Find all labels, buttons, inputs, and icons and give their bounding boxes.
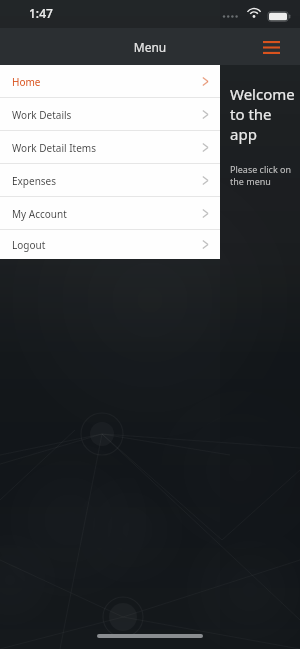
button[interactable]: Expenses: [0, 164, 220, 197]
button[interactable]: Home: [0, 65, 220, 98]
staticText: Expenses: [12, 174, 57, 188]
button[interactable]: Work Detail Items: [0, 131, 220, 164]
staticText: 1:47: [29, 5, 53, 21]
staticText: Work Detail Items: [12, 141, 96, 155]
staticText: Menu: [0, 39, 300, 55]
staticText: Work Details: [12, 108, 72, 122]
staticText: Logout: [12, 238, 46, 252]
staticText: Home: [12, 75, 41, 89]
staticText: My Account: [12, 207, 67, 221]
button[interactable]: Logout: [0, 230, 220, 259]
staticText: Welcome to the app: [230, 84, 300, 144]
staticText: Please click on the menu: [230, 163, 300, 187]
button[interactable]: Open navigation menu: [256, 33, 286, 61]
button[interactable]: My Account: [0, 197, 220, 230]
button[interactable]: Work Details: [0, 98, 220, 131]
